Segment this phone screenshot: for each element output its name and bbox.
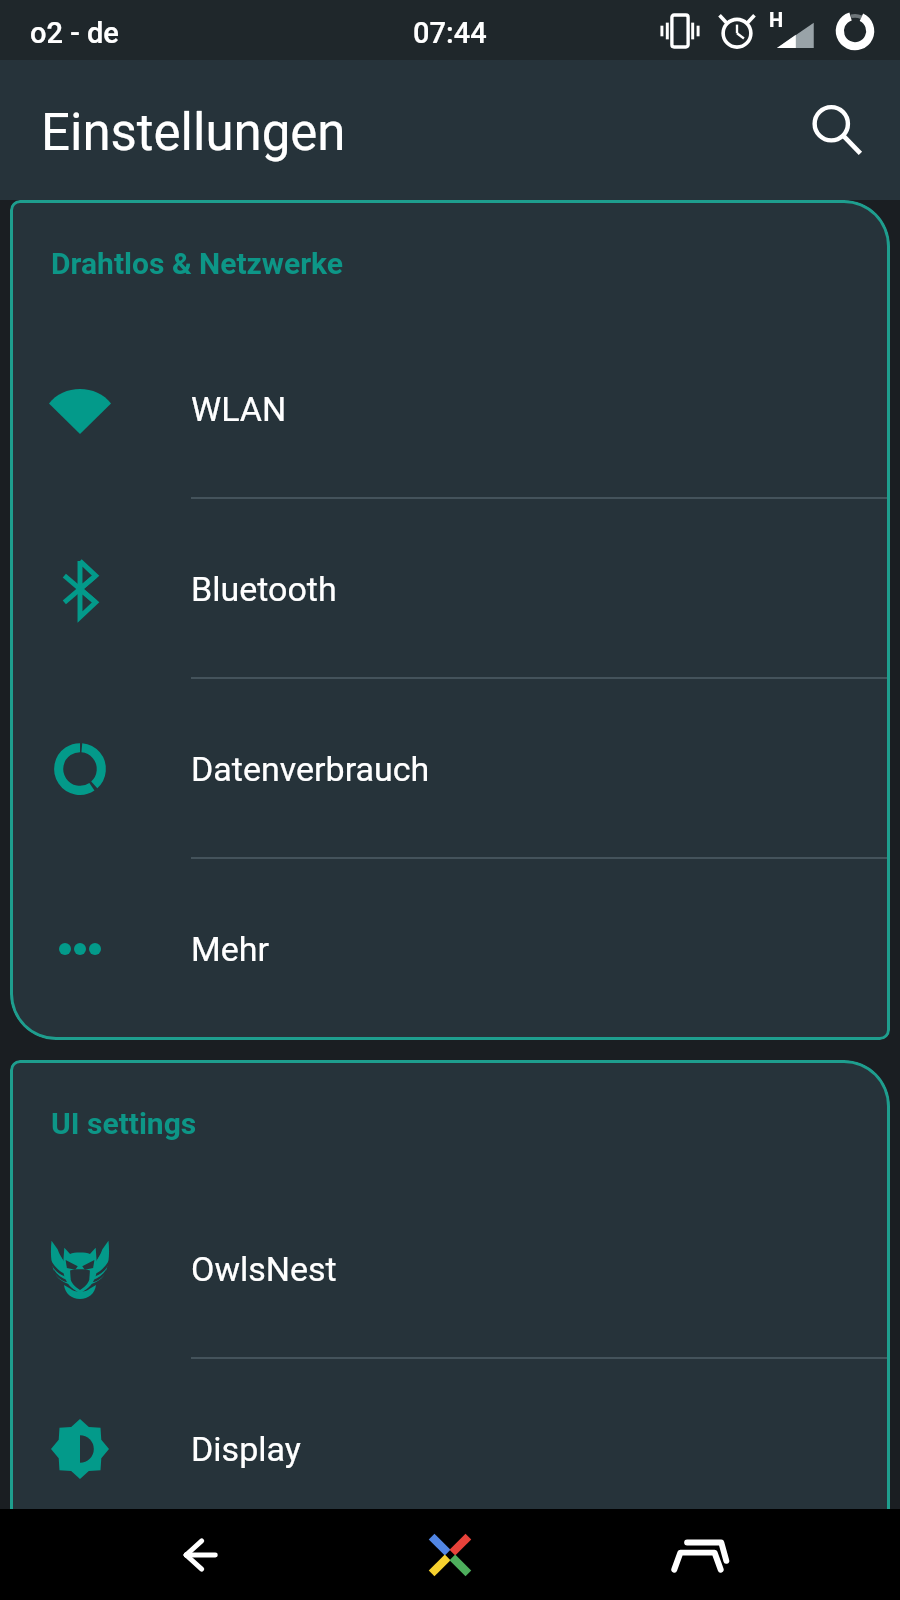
staticText: Mehr: [191, 929, 269, 969]
staticText: Einstellungen: [41, 103, 346, 163]
staticText: Drahtlos & Netzwerke: [51, 246, 344, 281]
staticText: o2 - de: [30, 16, 119, 50]
button[interactable]: Recents: [630, 1509, 770, 1600]
button[interactable]: Back: [130, 1509, 270, 1600]
staticText: Datenverbrauch: [191, 749, 430, 789]
button[interactable]: Home: [380, 1509, 520, 1600]
staticText: WLAN: [191, 389, 287, 429]
button[interactable]: Mehr: [10, 859, 890, 1039]
button[interactable]: OwlsNest: [10, 1179, 890, 1359]
staticText: OwlsNest: [191, 1249, 337, 1289]
button[interactable]: Datenverbrauch: [10, 679, 890, 859]
button[interactable]: WLAN: [10, 319, 890, 499]
button[interactable]: Search: [798, 91, 876, 169]
button[interactable]: Bluetooth: [10, 499, 890, 679]
staticText: H: [769, 8, 784, 31]
staticText: Bluetooth: [191, 569, 337, 609]
staticText: Display: [191, 1429, 301, 1469]
staticText: UI settings: [51, 1106, 197, 1141]
staticText: 07:44: [413, 16, 487, 50]
button[interactable]: Display: [10, 1359, 890, 1539]
